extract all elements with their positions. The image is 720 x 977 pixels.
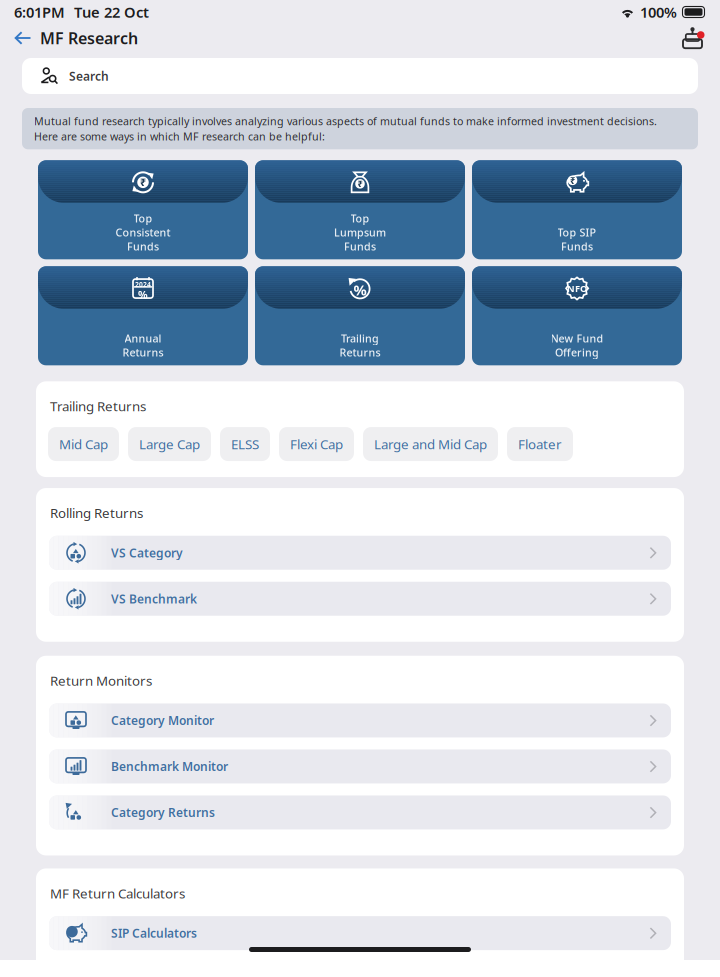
button[interactable]: Large Cap	[128, 427, 211, 461]
staticText: Top	[350, 211, 369, 225]
staticText: ₹	[357, 178, 362, 190]
button[interactable]: %	[255, 266, 465, 365]
staticText: Funds	[344, 239, 376, 253]
staticText: Category Returns	[111, 804, 215, 820]
button[interactable]: Search	[0, 54, 720, 94]
staticText: Floater	[518, 435, 562, 453]
staticText: Large Cap	[139, 435, 200, 453]
staticText: Top SIP	[557, 225, 596, 239]
staticText: ₹	[570, 174, 575, 186]
button[interactable]: Category Returns	[49, 795, 671, 829]
button[interactable]: Flexi Cap	[279, 427, 354, 461]
staticText: VS Category	[111, 545, 183, 561]
button[interactable]: NFO	[472, 266, 682, 365]
staticText: MF Research	[40, 27, 138, 49]
staticText: Annual	[124, 331, 161, 345]
staticText: Returns	[339, 345, 380, 359]
staticText: SIP Calculators	[111, 925, 197, 941]
staticText: Tue 22 Oct	[74, 2, 149, 22]
button[interactable]: MF Research	[0, 23, 138, 53]
staticText: Consistent	[115, 225, 170, 239]
staticText: Flexi Cap	[290, 435, 343, 453]
button[interactable]: ₹	[472, 160, 682, 259]
button[interactable]: ₹	[255, 160, 465, 259]
staticText: Trailing Returns	[50, 397, 146, 415]
button[interactable]: Floater	[507, 427, 573, 461]
button[interactable]: Mid Cap	[48, 427, 119, 461]
staticText: ELSS	[231, 435, 259, 453]
staticText: Funds	[127, 239, 159, 253]
staticText: %	[138, 287, 148, 302]
staticText: VS Benchmark	[111, 591, 197, 607]
button[interactable]: SIP Calculators	[49, 916, 671, 950]
staticText: 100%	[640, 2, 677, 22]
staticText: Rolling Returns	[50, 504, 143, 522]
staticText: 6:01PM	[14, 2, 65, 22]
staticText: 2024	[135, 280, 151, 289]
staticText: Returns	[122, 345, 163, 359]
button[interactable]: Benchmark Monitor	[49, 749, 671, 783]
staticText: MF Return Calculators	[50, 884, 185, 902]
button[interactable]: VS Benchmark	[49, 582, 671, 616]
staticText: New Fund	[550, 331, 603, 345]
staticText: Benchmark Monitor	[111, 758, 228, 774]
staticText: %	[353, 280, 366, 300]
staticText: Mutual fund research typically involves …	[34, 114, 657, 128]
staticText: Mid Cap	[59, 435, 108, 453]
staticText: Funds	[561, 239, 593, 253]
staticText: ₹	[140, 175, 146, 189]
staticText: Trailing	[341, 331, 379, 345]
button[interactable]: Inbox	[681, 26, 720, 50]
staticText: Category Monitor	[111, 712, 214, 728]
staticText: Lumpsum	[334, 225, 386, 239]
button[interactable]: Large and Mid Cap	[363, 427, 498, 461]
button[interactable]: 2024	[38, 266, 248, 365]
staticText: Return Monitors	[50, 672, 152, 689]
staticText: Search	[69, 68, 109, 84]
staticText: Large and Mid Cap	[374, 435, 487, 453]
staticText: Here are some ways in which MF research …	[34, 129, 325, 143]
staticText: Top	[133, 211, 152, 225]
button[interactable]: Category Monitor	[49, 703, 671, 737]
staticText: NFO	[567, 282, 587, 294]
button[interactable]: VS Category	[49, 536, 671, 570]
staticText: Offering	[555, 345, 599, 359]
button[interactable]: ₹	[38, 160, 248, 259]
button[interactable]: ELSS	[220, 427, 270, 461]
